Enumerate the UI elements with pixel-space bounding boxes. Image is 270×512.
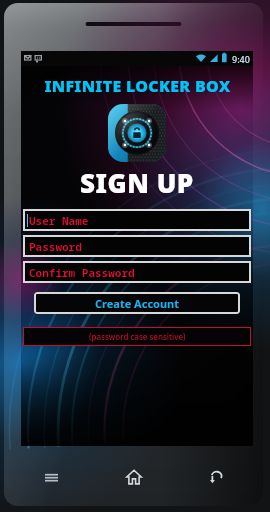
staticText: (password case sensitive) bbox=[89, 331, 186, 342]
staticText: Confirm Password bbox=[29, 265, 135, 280]
staticText: Password bbox=[29, 239, 82, 254]
button[interactable]: User Name bbox=[23, 209, 251, 231]
button[interactable]: Back bbox=[175, 452, 257, 502]
button[interactable]: Home bbox=[93, 452, 175, 502]
staticText: User Name bbox=[29, 213, 89, 228]
button[interactable]: Menu bbox=[10, 452, 93, 502]
staticText: 9:40 bbox=[232, 53, 250, 65]
staticText: Create Account bbox=[95, 296, 180, 311]
staticText: SIGN UP bbox=[80, 165, 194, 200]
staticText: INFINITE LOCKER BOX bbox=[44, 75, 231, 97]
button[interactable]: Create Account bbox=[34, 292, 240, 314]
button[interactable]: Confirm Password bbox=[23, 261, 251, 283]
button[interactable]: Password bbox=[23, 235, 251, 257]
